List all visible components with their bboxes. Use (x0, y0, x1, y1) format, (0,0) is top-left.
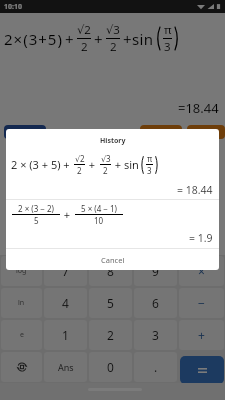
button[interactable]: log (1, 256, 42, 286)
button[interactable]: × (179, 256, 224, 286)
staticText: Cancel (101, 255, 125, 265)
button[interactable]: 8 (89, 256, 132, 286)
staticText: History (100, 136, 126, 146)
button[interactable]: 2 × (3 + 5) + (11, 153, 160, 176)
button[interactable]: 5 (89, 288, 132, 318)
staticText: = 18.44 (177, 183, 213, 197)
staticText: π (147, 153, 153, 164)
staticText: 10:10 (4, 2, 22, 12)
staticText: π (164, 22, 172, 38)
staticText: 6 (152, 295, 159, 311)
staticText: + (61, 207, 74, 222)
staticText: 0 (107, 359, 114, 375)
staticText: 2 (77, 165, 82, 176)
button[interactable] (4, 125, 46, 139)
staticText: 3 (152, 327, 159, 343)
staticText: 5 × (4 − 1) (81, 203, 117, 214)
staticText: +sin (123, 29, 154, 49)
staticText: + (94, 29, 103, 49)
button[interactable] (140, 125, 182, 139)
staticText: 2 × (3 + 5) + (11, 157, 73, 172)
staticText: + sin (112, 157, 139, 172)
staticText: ln (18, 298, 25, 308)
button[interactable]: 4 (44, 288, 87, 318)
staticText: − (198, 295, 205, 311)
staticText: 7 (62, 263, 69, 279)
staticText: =18.44 (178, 99, 219, 117)
button[interactable]: 0 (89, 352, 132, 382)
other: History (16, 361, 28, 373)
button[interactable]: Ans (44, 352, 87, 382)
staticText: √2 (77, 22, 91, 38)
button[interactable]: 2 (89, 320, 132, 350)
staticText: √3 (101, 153, 111, 164)
staticText: 3 (164, 39, 171, 55)
button[interactable]: 9 (134, 256, 177, 286)
button[interactable]: History (1, 352, 42, 382)
staticText: + (198, 327, 205, 343)
staticText: 4 (62, 295, 69, 311)
staticText: 10 (94, 215, 104, 226)
staticText: + (65, 29, 74, 49)
staticText: Ans (58, 361, 74, 373)
staticText: × (198, 263, 205, 279)
button[interactable]: ln (1, 288, 42, 318)
staticText: √3 (106, 22, 120, 38)
staticText: 2 × (3 − 2) (18, 203, 54, 214)
staticText: 1 (62, 327, 69, 343)
staticText: 9 (152, 263, 159, 279)
staticText: log (16, 266, 27, 276)
button[interactable]: Cancel (6, 249, 219, 270)
staticText: e (20, 330, 24, 340)
staticText: = 1.9 (189, 231, 213, 245)
staticText: 8 (107, 263, 114, 279)
button[interactable]: + (179, 320, 224, 350)
button[interactable]: 6 (134, 288, 177, 318)
staticText: 2×(3+5) (4, 29, 63, 49)
staticText: 2 (107, 327, 114, 343)
button[interactable]: e (1, 320, 42, 350)
staticText: √2 (75, 153, 85, 164)
staticText: 5 (34, 215, 39, 226)
staticText: + (86, 157, 99, 172)
button[interactable]: 2 × (3 − 2) (11, 203, 124, 226)
button[interactable]: Equals (180, 356, 224, 384)
staticText: . (154, 359, 158, 375)
button[interactable]: 7 (44, 256, 87, 286)
staticText: 5 (107, 295, 114, 311)
button[interactable] (187, 125, 225, 139)
staticText: 2 (81, 39, 88, 55)
button[interactable]: − (179, 288, 224, 318)
button[interactable]: 1 (44, 320, 87, 350)
staticText: 2 (103, 165, 108, 176)
button[interactable]: 3 (134, 320, 177, 350)
staticText: 2 (110, 39, 117, 55)
staticText: 3 (147, 165, 152, 176)
